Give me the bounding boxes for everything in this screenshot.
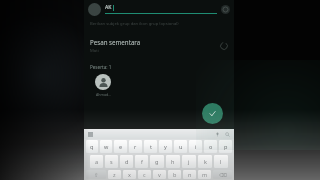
button[interactable]: Ahmad... xyxy=(92,74,114,97)
button[interactable]: a xyxy=(90,155,103,168)
button[interactable]: m xyxy=(198,170,211,179)
button[interactable]: Create group xyxy=(202,103,223,124)
staticText: j xyxy=(188,158,190,165)
staticText: d xyxy=(125,158,129,165)
button[interactable]: z xyxy=(108,170,121,179)
button[interactable]: q xyxy=(86,140,98,153)
staticText: h xyxy=(171,158,175,165)
staticText: AK xyxy=(105,4,112,11)
button[interactable]: o xyxy=(204,140,217,153)
staticText: s xyxy=(110,158,113,165)
button[interactable]: w xyxy=(100,140,112,153)
button[interactable]: y xyxy=(159,140,172,153)
staticText: e xyxy=(119,143,123,150)
button[interactable]: b xyxy=(168,170,181,179)
staticText: m xyxy=(202,171,208,178)
staticText: q xyxy=(90,143,94,150)
staticText: u xyxy=(179,143,183,150)
staticText: Berikan subjek grup dan ikon grup (opsio… xyxy=(90,21,179,27)
staticText: Peserta: 1 xyxy=(90,64,112,70)
button[interactable]: Search xyxy=(225,132,230,137)
button[interactable]: i xyxy=(189,140,202,153)
button[interactable]: s xyxy=(105,155,118,168)
staticText: a xyxy=(95,158,99,165)
button[interactable]: Backspace xyxy=(213,170,232,179)
button[interactable]: r xyxy=(129,140,142,153)
staticText: o xyxy=(209,143,213,150)
button[interactable]: Pesan sementara xyxy=(84,36,234,56)
staticText: l xyxy=(220,158,222,165)
button[interactable]: t xyxy=(144,140,157,153)
staticText: x xyxy=(128,171,131,178)
staticText: ⌫ xyxy=(219,172,227,178)
button[interactable]: c xyxy=(138,170,151,179)
staticText: p xyxy=(224,143,228,150)
staticText: b xyxy=(173,171,177,178)
staticText: n xyxy=(188,171,192,178)
staticText: r xyxy=(134,143,137,150)
button[interactable]: Voice input xyxy=(215,132,220,137)
button[interactable]: k xyxy=(198,155,212,168)
button[interactable]: h xyxy=(166,155,180,168)
button[interactable]: n xyxy=(183,170,196,179)
button[interactable]: x xyxy=(123,170,136,179)
button[interactable]: p xyxy=(219,140,232,153)
button[interactable]: d xyxy=(120,155,133,168)
staticText: ⇧ xyxy=(94,172,99,178)
staticText: Ahmad... xyxy=(96,92,111,97)
button[interactable]: j xyxy=(182,155,196,168)
staticText: v xyxy=(158,171,161,178)
button[interactable]: v xyxy=(153,170,166,179)
staticText: i xyxy=(195,143,197,150)
button[interactable]: Group icon xyxy=(88,3,101,16)
staticText: w xyxy=(104,143,109,150)
button[interactable]: e xyxy=(114,140,127,153)
staticText: z xyxy=(113,171,116,178)
staticText: k xyxy=(204,158,207,165)
staticText: Mati xyxy=(90,48,99,54)
staticText: Pesan sementara xyxy=(90,38,141,46)
staticText: g xyxy=(155,158,159,165)
staticText: c xyxy=(143,171,146,178)
button[interactable]: l xyxy=(214,155,228,168)
button[interactable]: u xyxy=(174,140,187,153)
button[interactable]: Shift xyxy=(86,170,106,179)
button[interactable]: g xyxy=(150,155,164,168)
button[interactable]: f xyxy=(135,155,148,168)
staticText: y xyxy=(164,143,167,150)
button[interactable]: Emoji xyxy=(221,5,230,14)
staticText: t xyxy=(150,143,152,150)
staticText: f xyxy=(141,158,143,165)
